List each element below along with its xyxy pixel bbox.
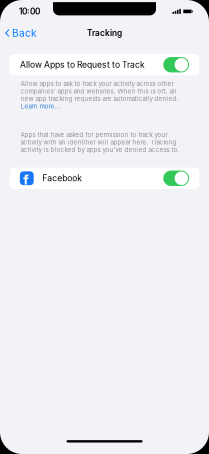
button[interactable]: Back	[0, 24, 44, 42]
button[interactable]: Allow Apps to Request to Track	[10, 54, 199, 75]
staticText: Allow apps to ask to track your activity…	[20, 80, 178, 102]
button[interactable]: Facebook	[10, 167, 199, 189]
staticText: Facebook	[42, 173, 82, 183]
staticText: Learn more...	[20, 102, 60, 110]
staticText: Apps that have asked for permission to t…	[20, 131, 179, 153]
staticText: Back	[12, 27, 37, 39]
button[interactable]: Learn more...	[20, 102, 188, 110]
staticText: Allow Apps to Request to Track	[20, 60, 145, 70]
staticText: Tracking	[87, 28, 122, 38]
staticText: 10:00	[19, 6, 40, 16]
